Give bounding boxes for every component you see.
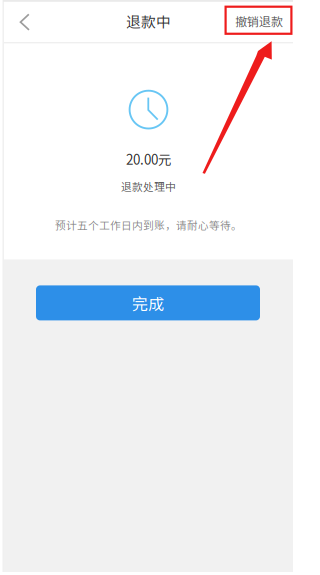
button[interactable]: 返回 (4, 0, 46, 42)
staticText: 退款处理中 (121, 179, 176, 194)
staticText: 20.00元 (126, 149, 171, 169)
staticText: 完成 (132, 291, 164, 314)
staticText: 撤销退款 (235, 12, 283, 30)
button[interactable]: 完成 (36, 285, 260, 320)
button[interactable]: 撤销退款 (225, 0, 293, 42)
staticText: 退款中 (126, 10, 171, 32)
staticText: 预计五个工作日内到账，请耐心等待。 (55, 217, 242, 232)
